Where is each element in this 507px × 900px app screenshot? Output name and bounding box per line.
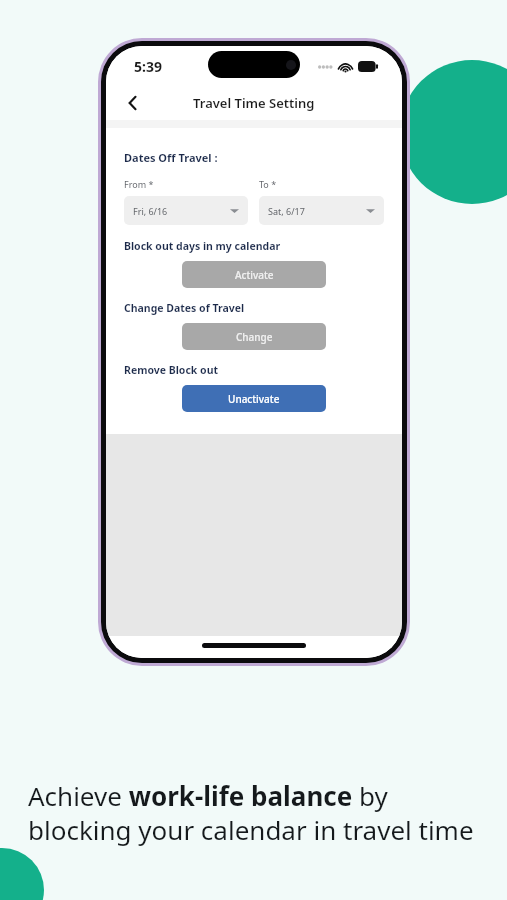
staticText: Dates Off Travel : <box>124 150 218 165</box>
staticText: Change <box>236 330 273 344</box>
staticText: Travel Time Setting <box>193 94 315 112</box>
staticText: Block out days in my calendar <box>124 239 281 253</box>
button[interactable]: Unactivate <box>182 385 326 412</box>
staticText: Change Dates of Travel <box>124 301 245 315</box>
button[interactable]: Back <box>116 86 150 120</box>
staticText: To * <box>259 178 277 190</box>
button[interactable]: Change <box>182 323 326 350</box>
staticText: Achieve work-life balance by blocking yo… <box>28 778 485 848</box>
staticText: Unactivate <box>228 392 280 406</box>
staticText: From * <box>124 178 154 190</box>
staticText: Remove Block out <box>124 363 219 377</box>
staticText: Sat, 6/17 <box>268 205 366 217</box>
button[interactable]: Activate <box>182 261 326 288</box>
button[interactable]: Sat, 6/17 <box>259 196 384 225</box>
staticText: 5:39 <box>134 57 162 76</box>
staticText: Fri, 6/16 <box>133 205 230 217</box>
staticText: Activate <box>235 268 274 282</box>
button[interactable]: Fri, 6/16 <box>124 196 248 225</box>
